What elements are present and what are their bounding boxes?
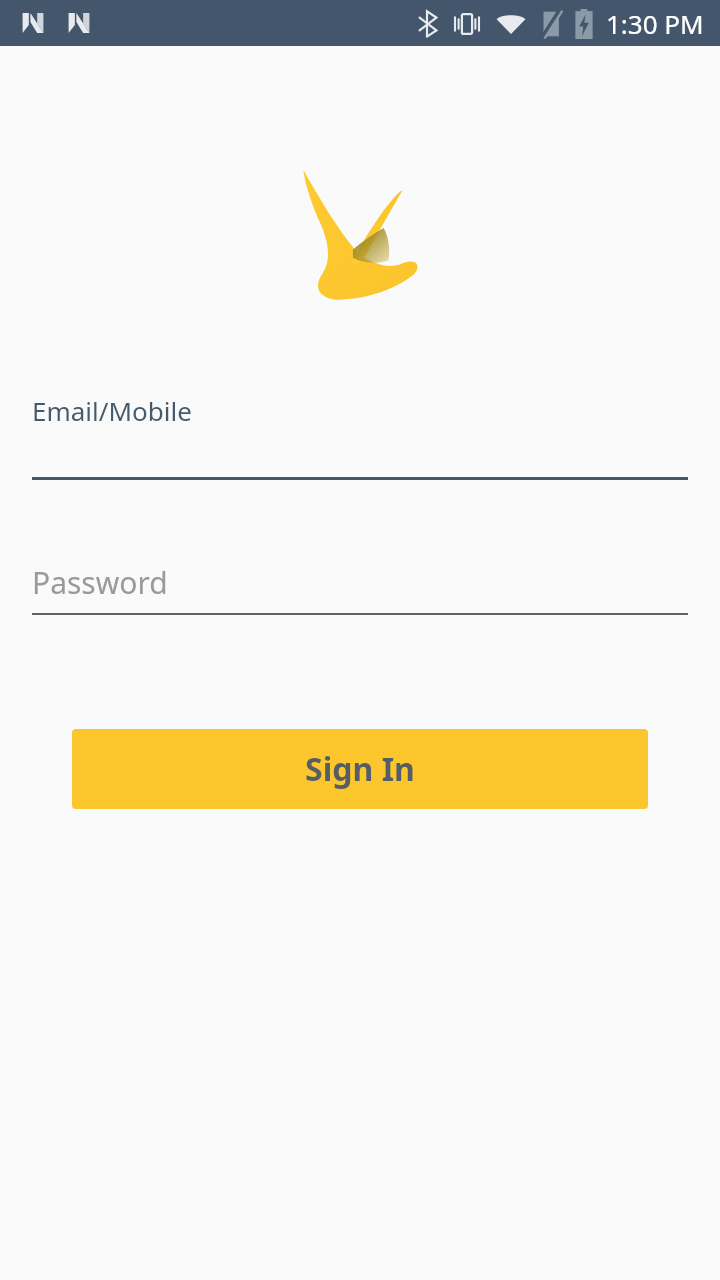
staticText: 1:30 PM [606, 6, 704, 41]
staticText: Sign In [305, 747, 415, 791]
button[interactable]: Password [0, 562, 720, 615]
staticText: Email/Mobile [32, 393, 192, 428]
button[interactable]: Email/Mobile [0, 393, 720, 480]
button[interactable]: Sign In [72, 729, 648, 809]
staticText: Password [32, 562, 168, 603]
